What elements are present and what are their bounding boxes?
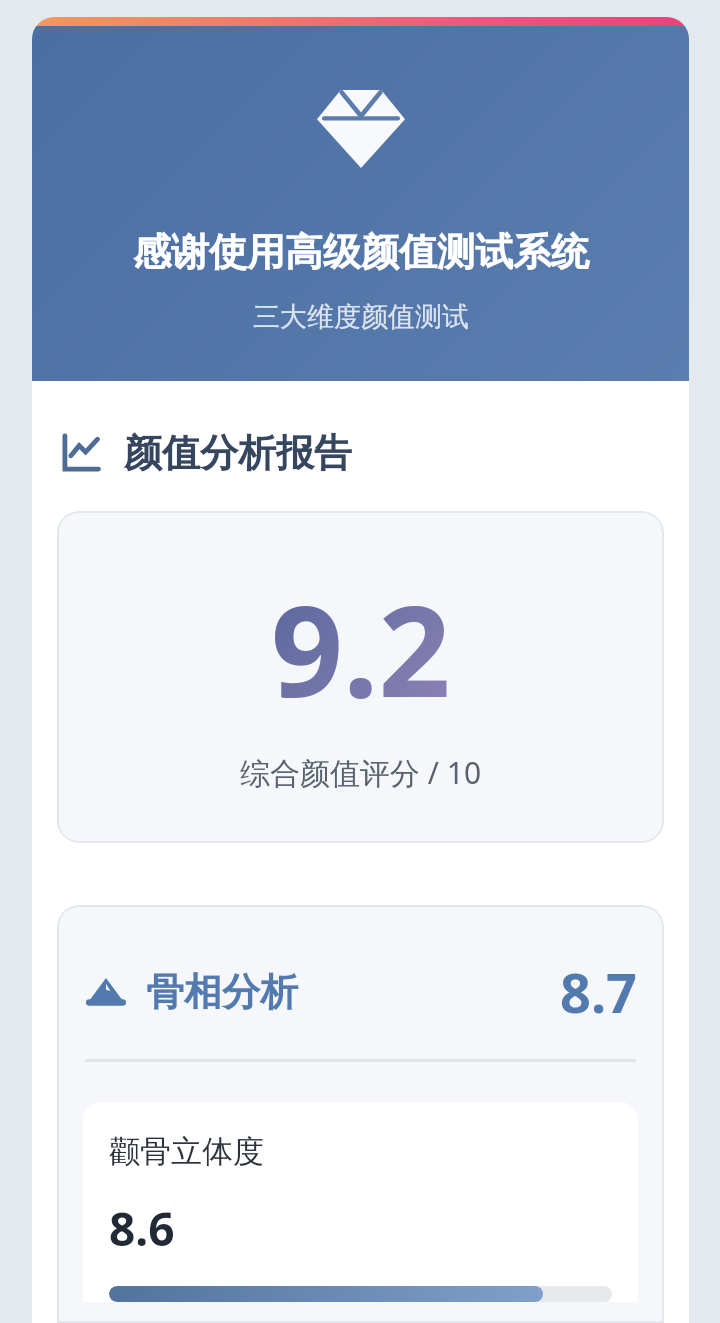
staticText: 9.2 (271, 562, 451, 734)
button[interactable]: 颧骨立体度 (83, 1102, 638, 1302)
button[interactable]: Report chart (32, 381, 689, 497)
staticText: 颜值分析报告 (124, 429, 352, 477)
staticText: 颧骨立体度 (109, 1132, 264, 1171)
other: Diamond (317, 84, 405, 168)
staticText: 8.6 (109, 1197, 175, 1260)
staticText: 感谢使用高级颜值测试系统 (133, 228, 589, 276)
other: Bone structure (84, 970, 128, 1014)
button[interactable]: Bone structure (57, 905, 664, 1323)
staticText: 综合颜值评分 / 10 (240, 752, 482, 793)
staticText: 8.7 (560, 955, 637, 1029)
button[interactable]: 9.2 (57, 511, 664, 843)
other: Report chart (58, 430, 104, 476)
staticText: 骨相分析 (146, 968, 298, 1016)
staticText: 三大维度颜值测试 (253, 300, 469, 334)
